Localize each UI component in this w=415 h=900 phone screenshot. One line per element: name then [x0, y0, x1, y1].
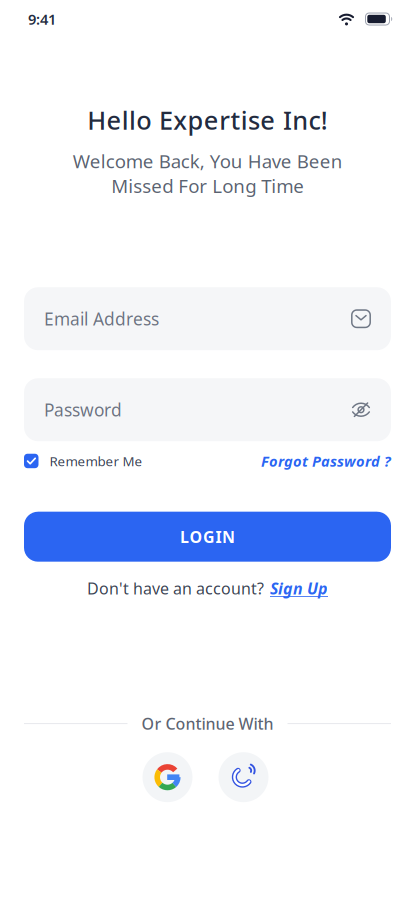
staticText: Hello Expertise Inc! — [87, 103, 328, 137]
staticText: Remember Me — [49, 452, 142, 470]
button[interactable]: Sign Up — [270, 578, 328, 599]
button[interactable]: Forgot Password ? — [261, 451, 391, 471]
staticText: Or Continue With — [141, 713, 273, 734]
button[interactable]: Remember Me — [24, 452, 142, 470]
staticText: Don't have an account? — [87, 578, 264, 599]
button[interactable]: Email Address — [24, 287, 391, 350]
button[interactable]: Continue with Phone — [218, 752, 268, 802]
staticText: LOGIN — [180, 526, 235, 547]
staticText: Sign Up — [270, 578, 328, 599]
staticText: 9:41 — [28, 9, 56, 29]
button[interactable]: Continue with Google — [142, 752, 192, 802]
staticText: Email Address — [44, 307, 159, 330]
staticText: Welcome Back, You Have Been Missed For L… — [72, 149, 342, 198]
staticText: Password — [44, 398, 122, 421]
button[interactable]: LOGIN — [24, 512, 391, 562]
button[interactable]: Password — [24, 378, 391, 441]
staticText: Forgot Password ? — [261, 451, 391, 471]
